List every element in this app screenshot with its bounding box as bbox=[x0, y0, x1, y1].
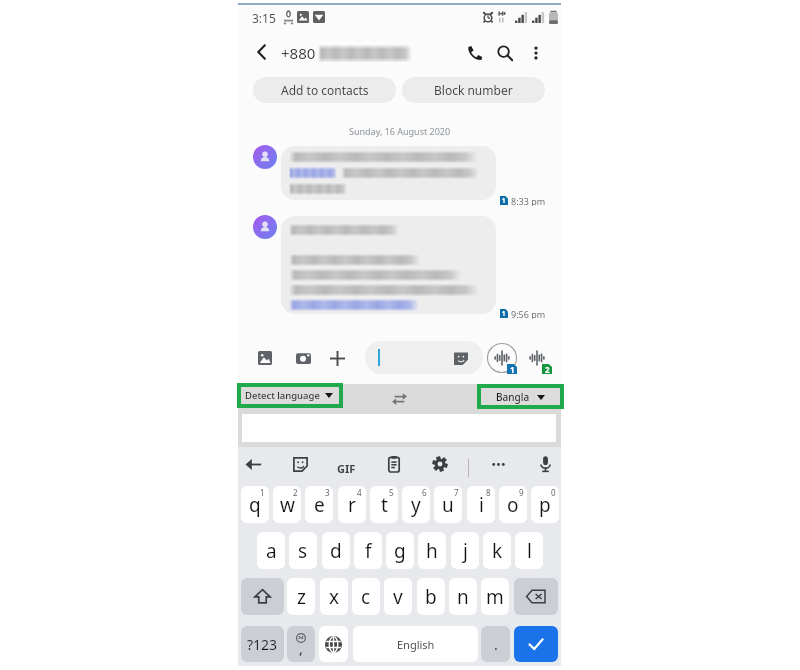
staticText: , bbox=[299, 639, 303, 658]
button[interactable]: g bbox=[386, 532, 414, 569]
button[interactable]: Comma and emoji bbox=[287, 626, 315, 662]
staticText: 4 bbox=[357, 487, 362, 498]
button[interactable]: t bbox=[370, 486, 398, 523]
button[interactable]: z bbox=[287, 578, 315, 615]
button[interactable]: s bbox=[289, 532, 317, 569]
button[interactable]: More options bbox=[521, 38, 551, 68]
button[interactable] bbox=[281, 146, 496, 200]
staticText: 6 bbox=[422, 487, 427, 498]
button[interactable]: e bbox=[305, 486, 333, 523]
button[interactable]: y bbox=[402, 486, 430, 523]
staticText: 8:33 pm bbox=[511, 195, 546, 206]
button[interactable]: Gallery bbox=[253, 346, 277, 370]
button[interactable]: Back bbox=[242, 453, 264, 475]
button[interactable]: GIF bbox=[337, 461, 356, 476]
button[interactable] bbox=[241, 578, 284, 615]
button[interactable]: Search bbox=[490, 38, 520, 68]
staticText: f bbox=[365, 538, 372, 564]
button[interactable]: Swap languages bbox=[391, 390, 408, 407]
staticText: 2 bbox=[545, 364, 550, 374]
staticText: p bbox=[539, 492, 551, 518]
button[interactable]: n bbox=[449, 578, 477, 615]
button[interactable]: w bbox=[273, 486, 301, 523]
button[interactable]: a bbox=[257, 532, 285, 569]
button[interactable]: Settings bbox=[429, 453, 451, 475]
button[interactable]: Clipboard bbox=[383, 453, 405, 475]
button[interactable]: Detect language bbox=[241, 387, 339, 404]
staticText: r bbox=[348, 492, 356, 518]
button[interactable] bbox=[514, 626, 558, 662]
button[interactable]: h bbox=[418, 532, 446, 569]
staticText: h bbox=[426, 538, 438, 564]
button[interactable]: c bbox=[352, 578, 380, 615]
button[interactable]: More bbox=[487, 453, 509, 475]
staticText: a bbox=[266, 538, 277, 564]
button[interactable] bbox=[514, 578, 558, 615]
button[interactable]: Back bbox=[248, 38, 276, 66]
button[interactable]: o bbox=[499, 486, 527, 523]
staticText: 2 bbox=[293, 487, 298, 498]
staticText: 3 bbox=[325, 487, 330, 498]
staticText: e bbox=[314, 492, 325, 518]
staticText: 7 bbox=[454, 487, 459, 498]
button[interactable]: Stickers bbox=[289, 453, 311, 475]
button[interactable]: d bbox=[322, 532, 350, 569]
button[interactable]: q bbox=[241, 486, 269, 523]
button[interactable]: English bbox=[353, 626, 478, 662]
button[interactable]: i bbox=[467, 486, 495, 523]
button[interactable]: p bbox=[531, 486, 559, 523]
staticText: u bbox=[442, 492, 454, 518]
button[interactable]: x bbox=[320, 578, 348, 615]
button[interactable]: l bbox=[515, 532, 543, 569]
button[interactable] bbox=[365, 341, 483, 374]
staticText: English bbox=[397, 637, 435, 652]
staticText: v bbox=[393, 584, 403, 610]
staticText: c bbox=[361, 584, 371, 610]
staticText: Sunday, 16 August 2020 bbox=[349, 125, 451, 137]
staticText: GIF bbox=[337, 461, 356, 476]
button[interactable]: v bbox=[384, 578, 412, 615]
staticText: 8 bbox=[486, 487, 491, 498]
button[interactable]: b bbox=[417, 578, 445, 615]
button[interactable]: k bbox=[483, 532, 511, 569]
button[interactable]: Voice typing bbox=[534, 453, 556, 475]
staticText: g bbox=[394, 538, 406, 564]
button[interactable]: Voice input bbox=[526, 347, 548, 369]
button[interactable]: j bbox=[451, 532, 479, 569]
button[interactable]: m bbox=[481, 578, 509, 615]
button[interactable]: Camera bbox=[291, 346, 315, 370]
staticText: Detect language bbox=[245, 389, 320, 402]
staticText: 0 bbox=[551, 487, 556, 498]
button[interactable]: r bbox=[338, 486, 366, 523]
button[interactable]: Add to contacts bbox=[253, 77, 396, 103]
staticText: t bbox=[381, 492, 388, 518]
staticText: 1 bbox=[510, 364, 515, 374]
staticText: l bbox=[527, 538, 532, 564]
staticText: Bangla bbox=[496, 390, 530, 404]
staticText: n bbox=[457, 584, 469, 610]
staticText: k bbox=[492, 538, 503, 564]
button[interactable]: Voice message bbox=[487, 343, 517, 373]
staticText: 3:15 bbox=[252, 10, 276, 26]
staticText: +880 bbox=[281, 43, 316, 63]
button[interactable] bbox=[319, 626, 348, 662]
staticText: q bbox=[249, 492, 261, 518]
staticText: Add to contacts bbox=[281, 82, 369, 98]
button[interactable]: ?123 bbox=[241, 626, 284, 662]
staticText: z bbox=[297, 584, 306, 610]
button[interactable]: Bangla bbox=[481, 388, 560, 405]
staticText: x bbox=[329, 584, 340, 610]
staticText: s bbox=[298, 538, 308, 564]
button[interactable]: Add attachment bbox=[325, 346, 349, 370]
staticText: m bbox=[486, 584, 504, 610]
staticText: . bbox=[494, 635, 498, 654]
button[interactable]: . bbox=[481, 626, 510, 662]
button[interactable]: Block number bbox=[402, 77, 545, 103]
staticText: d bbox=[330, 538, 342, 564]
button[interactable] bbox=[281, 216, 496, 314]
button[interactable]: u bbox=[434, 486, 462, 523]
button[interactable]: Call bbox=[460, 38, 490, 68]
staticText: Block number bbox=[434, 82, 513, 98]
button[interactable]: f bbox=[354, 532, 382, 569]
